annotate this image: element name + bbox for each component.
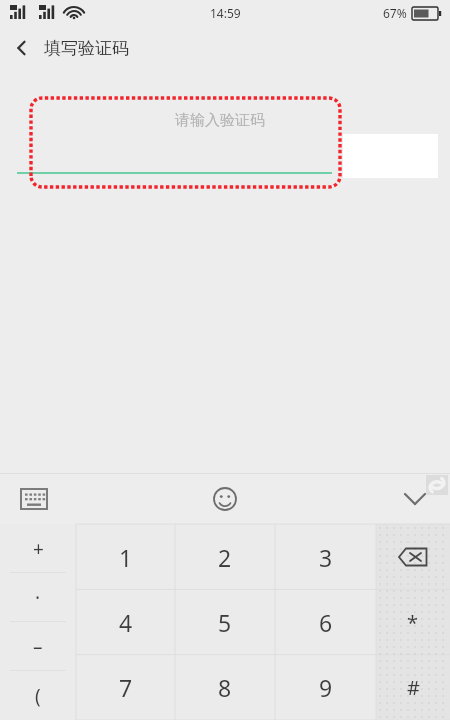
button[interactable]: Hide keyboard bbox=[395, 481, 435, 517]
button[interactable]: Emoji bbox=[203, 477, 247, 521]
staticText: 6 bbox=[319, 607, 333, 638]
button[interactable]: + bbox=[0, 524, 76, 573]
staticText: 14:59 bbox=[210, 5, 241, 21]
staticText: 1 bbox=[119, 542, 133, 573]
button[interactable]: 3 bbox=[275, 524, 376, 590]
button[interactable]: 5 bbox=[175, 590, 275, 655]
button[interactable]: 7 bbox=[76, 655, 175, 720]
button[interactable]: * bbox=[376, 590, 450, 655]
button[interactable] bbox=[17, 98, 342, 188]
button[interactable]: Delete bbox=[376, 524, 450, 590]
staticText: 7 bbox=[119, 672, 133, 703]
button[interactable]: Back bbox=[0, 26, 44, 70]
button[interactable]: 2 bbox=[175, 524, 275, 590]
staticText: 8 bbox=[218, 672, 232, 703]
staticText: · bbox=[35, 585, 41, 611]
staticText: + bbox=[33, 536, 44, 562]
button[interactable]: 8 bbox=[175, 655, 275, 720]
staticText: 5 bbox=[218, 607, 232, 638]
staticText: 请输入验证码 bbox=[175, 111, 265, 130]
staticText: 填写验证码 bbox=[44, 38, 129, 59]
staticText: 3 bbox=[319, 542, 333, 573]
button[interactable]: 4 bbox=[76, 590, 175, 655]
staticText: # bbox=[407, 674, 420, 701]
button[interactable]: # bbox=[376, 655, 450, 720]
button[interactable]: ( bbox=[0, 671, 76, 720]
staticText: ( bbox=[35, 683, 41, 709]
button[interactable]: – bbox=[0, 622, 76, 671]
staticText: 2 bbox=[218, 542, 232, 573]
button[interactable]: 6 bbox=[275, 590, 376, 655]
staticText: * bbox=[407, 609, 419, 636]
staticText: – bbox=[33, 634, 43, 660]
button[interactable]: 9 bbox=[275, 655, 376, 720]
button[interactable]: Switch keyboard bbox=[12, 484, 56, 514]
button[interactable]: · bbox=[0, 573, 76, 622]
staticText: 4 bbox=[119, 607, 133, 638]
staticText: 67% bbox=[383, 5, 407, 21]
button[interactable]: 1 bbox=[76, 524, 175, 590]
staticText: 9 bbox=[319, 672, 333, 703]
